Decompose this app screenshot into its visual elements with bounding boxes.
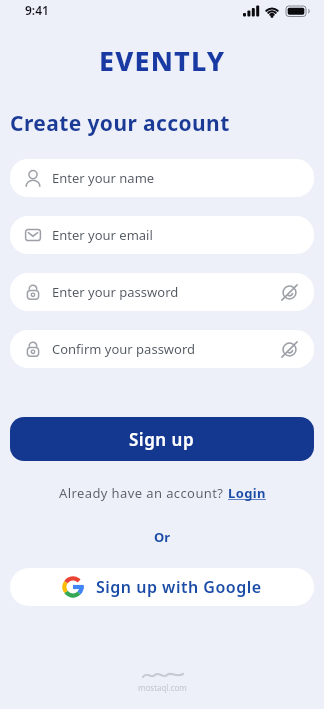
staticText: Create your account (10, 109, 230, 138)
button[interactable]: Sign up (10, 417, 314, 461)
staticText: Sign up with Google (96, 576, 262, 598)
button[interactable]: Enter your name (10, 159, 314, 197)
staticText: 9:41 (25, 2, 49, 18)
staticText: mostaql.com (138, 682, 187, 693)
button[interactable]: Sign up with Google (10, 568, 314, 606)
staticText: Confirm your password (52, 340, 278, 358)
staticText: Enter your password (52, 283, 278, 301)
button[interactable]: Confirm your password (10, 330, 314, 368)
button[interactable]: Enter your email (10, 216, 314, 254)
staticText: Or (154, 528, 171, 546)
button[interactable]: Enter your password (10, 273, 314, 311)
staticText: EVENTLY (99, 42, 226, 79)
button[interactable]: Login (228, 484, 266, 502)
staticText: Enter your name (52, 169, 314, 187)
staticText: Already have an account? (59, 484, 228, 502)
staticText: Sign up (129, 428, 195, 451)
staticText: Enter your email (52, 226, 314, 244)
